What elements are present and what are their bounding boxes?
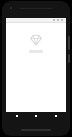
button[interactable]: Empty state illustration	[29, 33, 43, 47]
button[interactable]: Recents	[53, 113, 59, 119]
button[interactable]: Back	[14, 113, 20, 119]
button[interactable]: Home	[33, 113, 39, 119]
